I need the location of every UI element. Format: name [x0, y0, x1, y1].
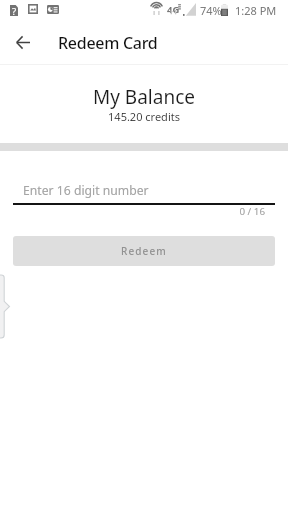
button[interactable]: Redeem: [13, 236, 275, 266]
staticText: Redeem Card: [58, 32, 158, 54]
staticText: 1:28 PM: [235, 3, 277, 18]
staticText: ?: [12, 5, 17, 16]
button[interactable]: Open menu: [0, 275, 11, 338]
staticText: My Balance: [0, 84, 288, 110]
staticText: Redeem: [121, 244, 167, 258]
staticText: Enter 16 digit number: [23, 182, 149, 199]
staticText: 0 / 16: [0, 205, 265, 218]
staticText: 145.20 credits: [0, 109, 288, 124]
button[interactable]: Navigate up: [10, 29, 36, 55]
staticText: 74%: [200, 3, 222, 18]
staticText: 4G: [167, 3, 180, 16]
